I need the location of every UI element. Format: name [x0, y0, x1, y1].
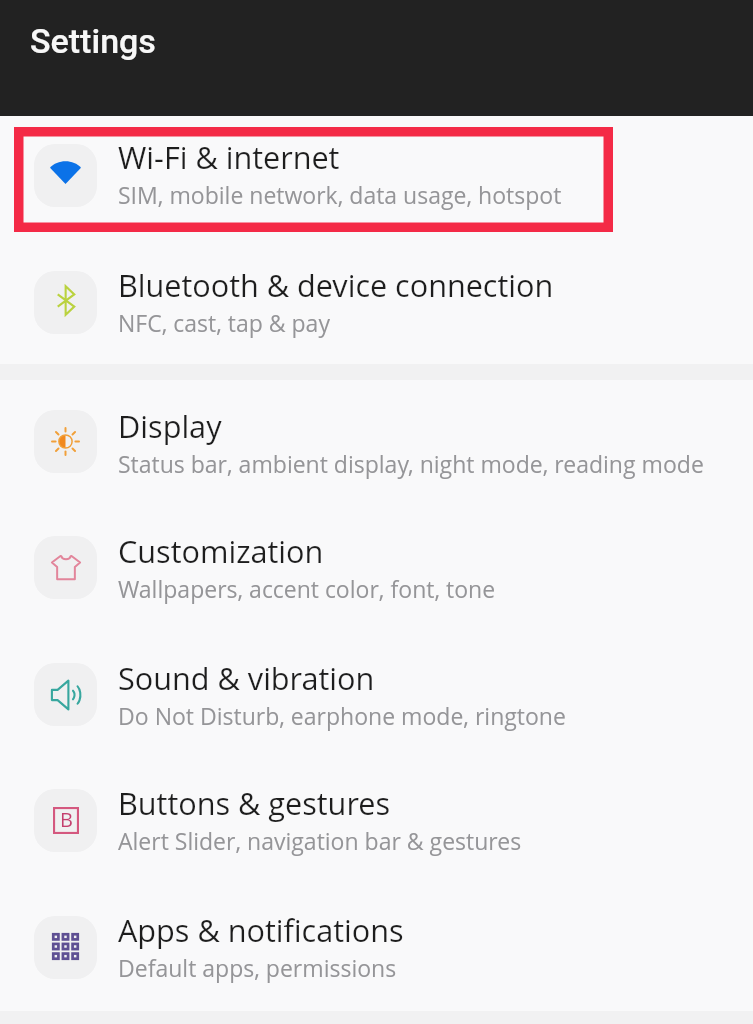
other: Bluetooth	[57, 286, 75, 315]
staticText: Wi-Fi & internet	[118, 136, 340, 178]
button[interactable]: Wi-Fi	[0, 112, 753, 238]
staticText: Sound & vibration	[118, 657, 375, 699]
staticText: Settings	[30, 21, 156, 61]
other: Customization	[51, 555, 81, 580]
staticText: Apps & notifications	[118, 909, 404, 951]
button[interactable]: Sound	[0, 631, 753, 757]
button[interactable]: Apps	[0, 884, 753, 1010]
staticText: Do Not Disturb, earphone mode, ringtone	[118, 700, 566, 731]
other: Display	[51, 427, 80, 456]
staticText: NFC, cast, tap & pay	[118, 307, 330, 338]
button[interactable]: Buttons and gestures	[0, 757, 753, 883]
other: Apps	[51, 932, 80, 961]
staticText: Display	[118, 405, 222, 447]
button[interactable]: Bluetooth	[0, 239, 753, 365]
staticText: Wallpapers, accent color, font, tone	[118, 573, 496, 604]
staticText: B	[60, 806, 73, 833]
button[interactable]: Display	[0, 378, 753, 504]
staticText: Status bar, ambient display, night mode,…	[118, 448, 704, 479]
staticText: Customization	[118, 530, 324, 572]
staticText: Alert Slider, navigation bar & gestures	[118, 825, 522, 856]
button[interactable]: Customization	[0, 504, 753, 630]
staticText: Bluetooth & device connection	[118, 264, 554, 306]
staticText: Default apps, permissions	[118, 952, 397, 983]
other: Sound	[51, 680, 81, 710]
other: Wi-Fi	[50, 160, 81, 184]
other: Buttons and gestures	[53, 807, 79, 834]
staticText: Buttons & gestures	[118, 782, 391, 824]
staticText: SIM, mobile network, data usage, hotspot	[118, 179, 562, 210]
